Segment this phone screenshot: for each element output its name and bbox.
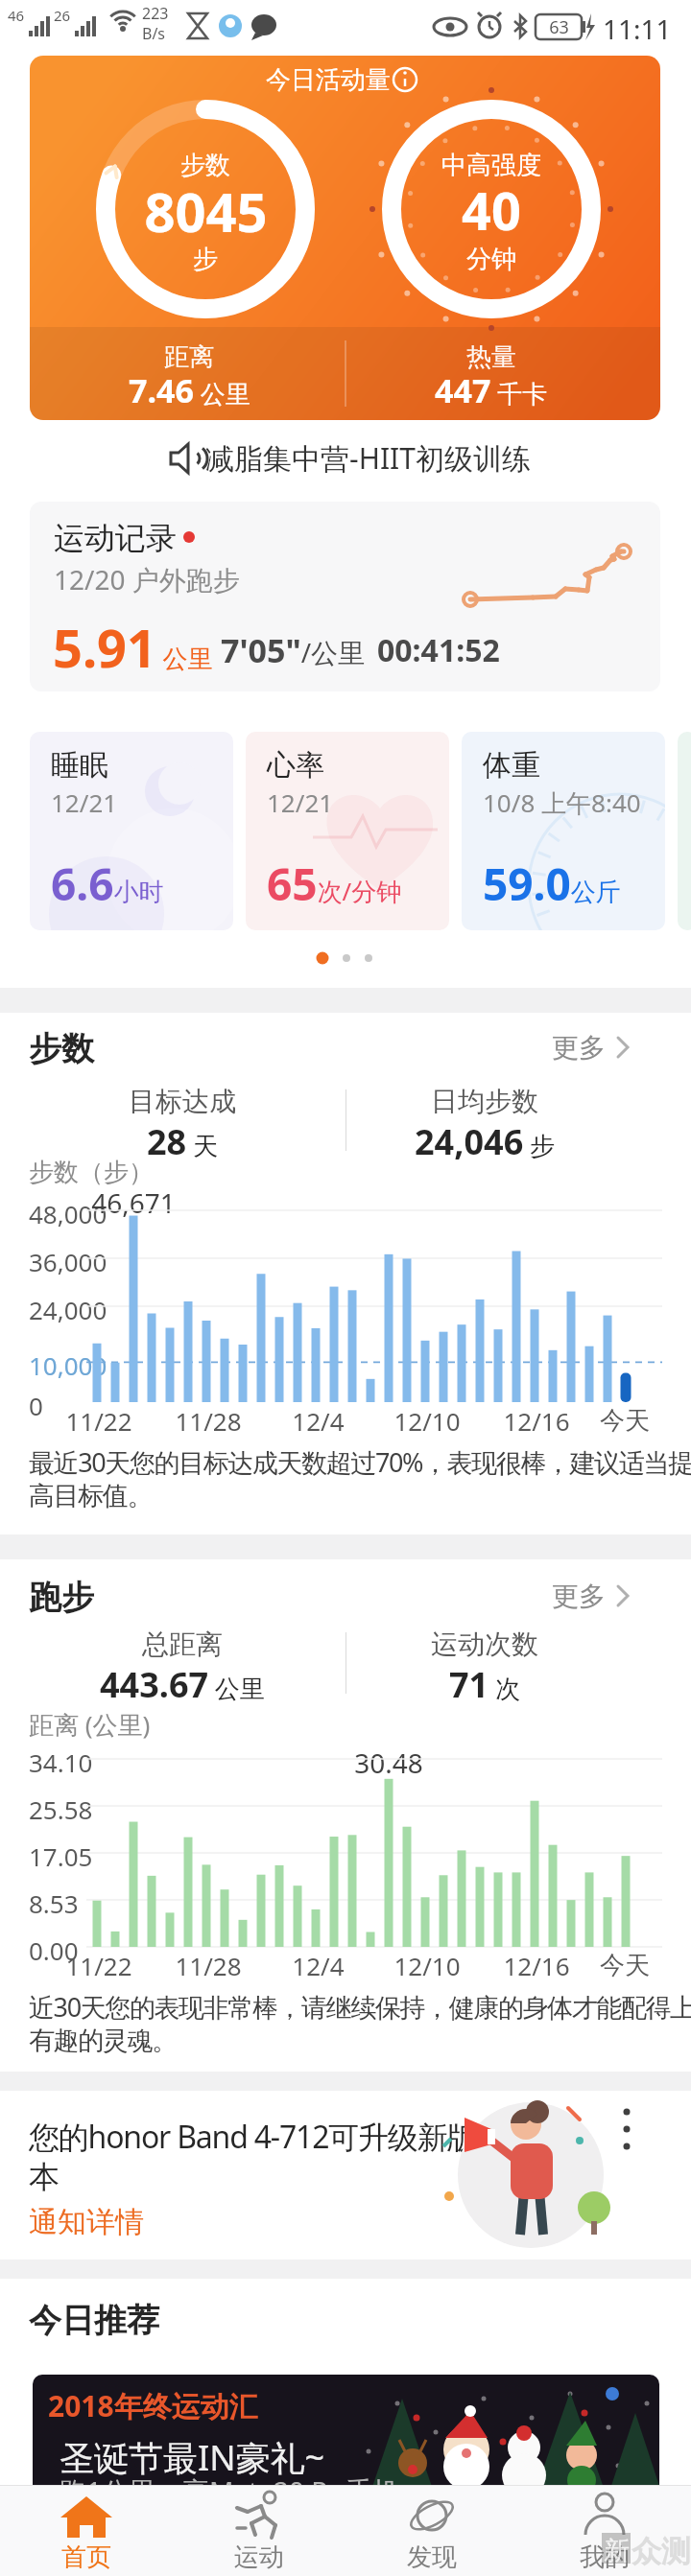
staticText: 59.0公斤 (483, 854, 621, 914)
staticText: 运动次数 (431, 1628, 538, 1661)
button[interactable]: 心率 (246, 732, 449, 930)
button[interactable]: 今日活动量 (30, 56, 660, 420)
staticText: 目标达成 (129, 1085, 236, 1118)
staticText: 分钟 (466, 244, 516, 275)
button[interactable]: 2018年终运动汇 (33, 2375, 659, 2576)
staticText: 12/4 (292, 1949, 345, 1982)
staticText: 24,046 步 (415, 1118, 555, 1165)
staticText: 跑1公里，享Mate20 P...手机 (60, 2472, 443, 2509)
staticText: 36,000 (29, 1245, 125, 1278)
staticText: 6.6小时 (51, 854, 164, 914)
staticText: 高目标值。 (29, 1480, 317, 1512)
staticText: 步 (193, 244, 218, 275)
staticText: 发现 (407, 2541, 457, 2573)
staticText: 12/21 (51, 785, 204, 819)
staticText: B/s (142, 23, 180, 44)
button[interactable] (190, 2485, 328, 2576)
staticText: 25.58 (29, 1792, 125, 1826)
staticText: 日均步数 (431, 1085, 538, 1118)
staticText: 10/8 上午8:40 (483, 785, 655, 820)
staticText: 运动记录 (54, 519, 246, 557)
staticText: 12/16 (503, 1949, 570, 1982)
staticText: 众测 (631, 2533, 691, 2570)
staticText: 今日活动量 (266, 64, 391, 96)
staticText: 7.46 公里 (129, 368, 250, 412)
staticText: 40 (462, 175, 521, 246)
staticText: 有趣的灵魂。 (29, 2025, 317, 2057)
staticText: 26 (54, 6, 83, 25)
staticText: 心率 (267, 747, 420, 784)
staticText: 28 天 (147, 1118, 218, 1165)
staticText: 中高强度 (441, 150, 541, 181)
button[interactable]: 您的honor Band 4-712可升级新版 (0, 2091, 691, 2260)
staticText: 11/28 (175, 1949, 242, 1982)
staticText: 12/10 (393, 1949, 461, 1982)
staticText: 距离 (公里) (29, 1707, 221, 1742)
staticText: 12/20 户外跑步 (54, 561, 342, 597)
staticText: 今天 (600, 1405, 650, 1437)
staticText: 首页 (61, 2541, 111, 2573)
staticText: 运动 (234, 2541, 284, 2573)
staticText: 您的honor Band 4-712可升级新版 (29, 2116, 480, 2158)
staticText: 2018年终运动汇 (48, 2386, 336, 2425)
staticText: 最近30天您的目标达成天数超过70%，表现很棒，建议适当提 (29, 1444, 691, 1480)
staticText: 12/16 (503, 1404, 570, 1438)
staticText: 223 (142, 3, 180, 24)
staticText: 34.10 (29, 1745, 125, 1779)
staticText: 热量 (466, 341, 516, 373)
staticText: 体重 (483, 747, 636, 784)
staticText: 7'05"/公里 (221, 628, 366, 672)
staticText: 更多 (552, 1031, 606, 1065)
staticText: 443.67 公里 (100, 1661, 265, 1708)
staticText: 46 (8, 6, 36, 25)
button[interactable] (363, 2485, 501, 2576)
button[interactable]: 更多 (552, 1026, 657, 1068)
staticText: 10,000 (29, 1348, 125, 1382)
staticText: 17.05 (29, 1839, 125, 1873)
staticText: 447 千卡 (435, 368, 548, 412)
staticText: 步数（步） (29, 1157, 221, 1188)
staticText: 11/22 (65, 1404, 132, 1438)
staticText: 今日推荐 (29, 2300, 662, 2341)
staticText: 我的 (580, 2541, 630, 2573)
button[interactable]: 更多 (552, 1575, 657, 1617)
staticText: 48,000 (29, 1197, 125, 1230)
staticText: 跑步 (29, 1577, 221, 1618)
staticText: 12/4 (292, 1404, 345, 1438)
staticText: 24,000 (29, 1293, 125, 1326)
button[interactable] (17, 2485, 155, 2576)
staticText: 46,671 (91, 1184, 176, 1221)
staticText: 睡眠 (51, 747, 204, 784)
button[interactable]: 体重 (462, 732, 665, 930)
staticText: 12/10 (393, 1404, 461, 1438)
staticText: 圣诞节最IN豪礼~ (60, 2434, 386, 2481)
button[interactable] (144, 432, 547, 481)
staticText: 本 (29, 2158, 125, 2196)
staticText: 71 次 (449, 1661, 520, 1708)
staticText: 00:41:52 (377, 629, 500, 671)
staticText: 8.53 (29, 1886, 125, 1920)
staticText: 总距离 (142, 1628, 223, 1661)
staticText: 步数 (180, 150, 230, 181)
staticText: 0.00 (29, 1933, 125, 1967)
staticText: 距离 (164, 341, 214, 373)
staticText: 63 (549, 15, 569, 39)
staticText: 30.48 (354, 1745, 423, 1781)
button[interactable]: 运动记录 (30, 502, 660, 691)
staticText: 更多 (552, 1580, 606, 1613)
staticText: 11:11 (603, 11, 672, 47)
button[interactable] (536, 2485, 674, 2576)
staticText: 新 (604, 2535, 642, 2567)
staticText: 11/28 (175, 1404, 242, 1438)
staticText: 65次/分钟 (267, 854, 402, 914)
staticText: 8045 (144, 175, 268, 247)
staticText: 0 (29, 1389, 125, 1422)
button[interactable]: 睡眠 (30, 732, 233, 930)
staticText: 步数 (29, 1028, 221, 1069)
staticText: 11/22 (65, 1949, 132, 1982)
staticText: 减脂集中营-HIIT初级训练 (205, 438, 531, 478)
staticText: 12/21 (267, 785, 420, 819)
staticText: 今天 (600, 1950, 650, 1981)
staticText: 5.91 公里 (53, 612, 213, 683)
staticText: 通知详情 (29, 2204, 221, 2240)
